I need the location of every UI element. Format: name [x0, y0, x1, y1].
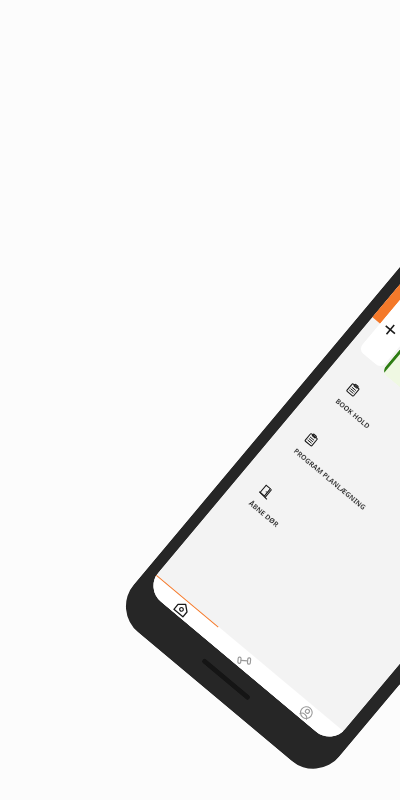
staticText: BOOK HOLD [333, 397, 372, 432]
other: Add [382, 321, 399, 338]
button[interactable]: ÅBNE DØR [234, 471, 372, 598]
button[interactable]: PROGRAM PLANLÆGNING [279, 419, 400, 546]
button[interactable]: Profile [270, 679, 343, 745]
button[interactable]: Home [145, 575, 219, 641]
button[interactable] [381, 304, 400, 392]
button[interactable]: Add [358, 284, 400, 369]
staticText: ÅBNE DØR [246, 499, 281, 530]
staticText: PROGRAM PLANLÆGNING [291, 446, 368, 513]
button[interactable]: BOOK HOLD [321, 369, 400, 496]
button[interactable]: Workouts [208, 627, 281, 693]
